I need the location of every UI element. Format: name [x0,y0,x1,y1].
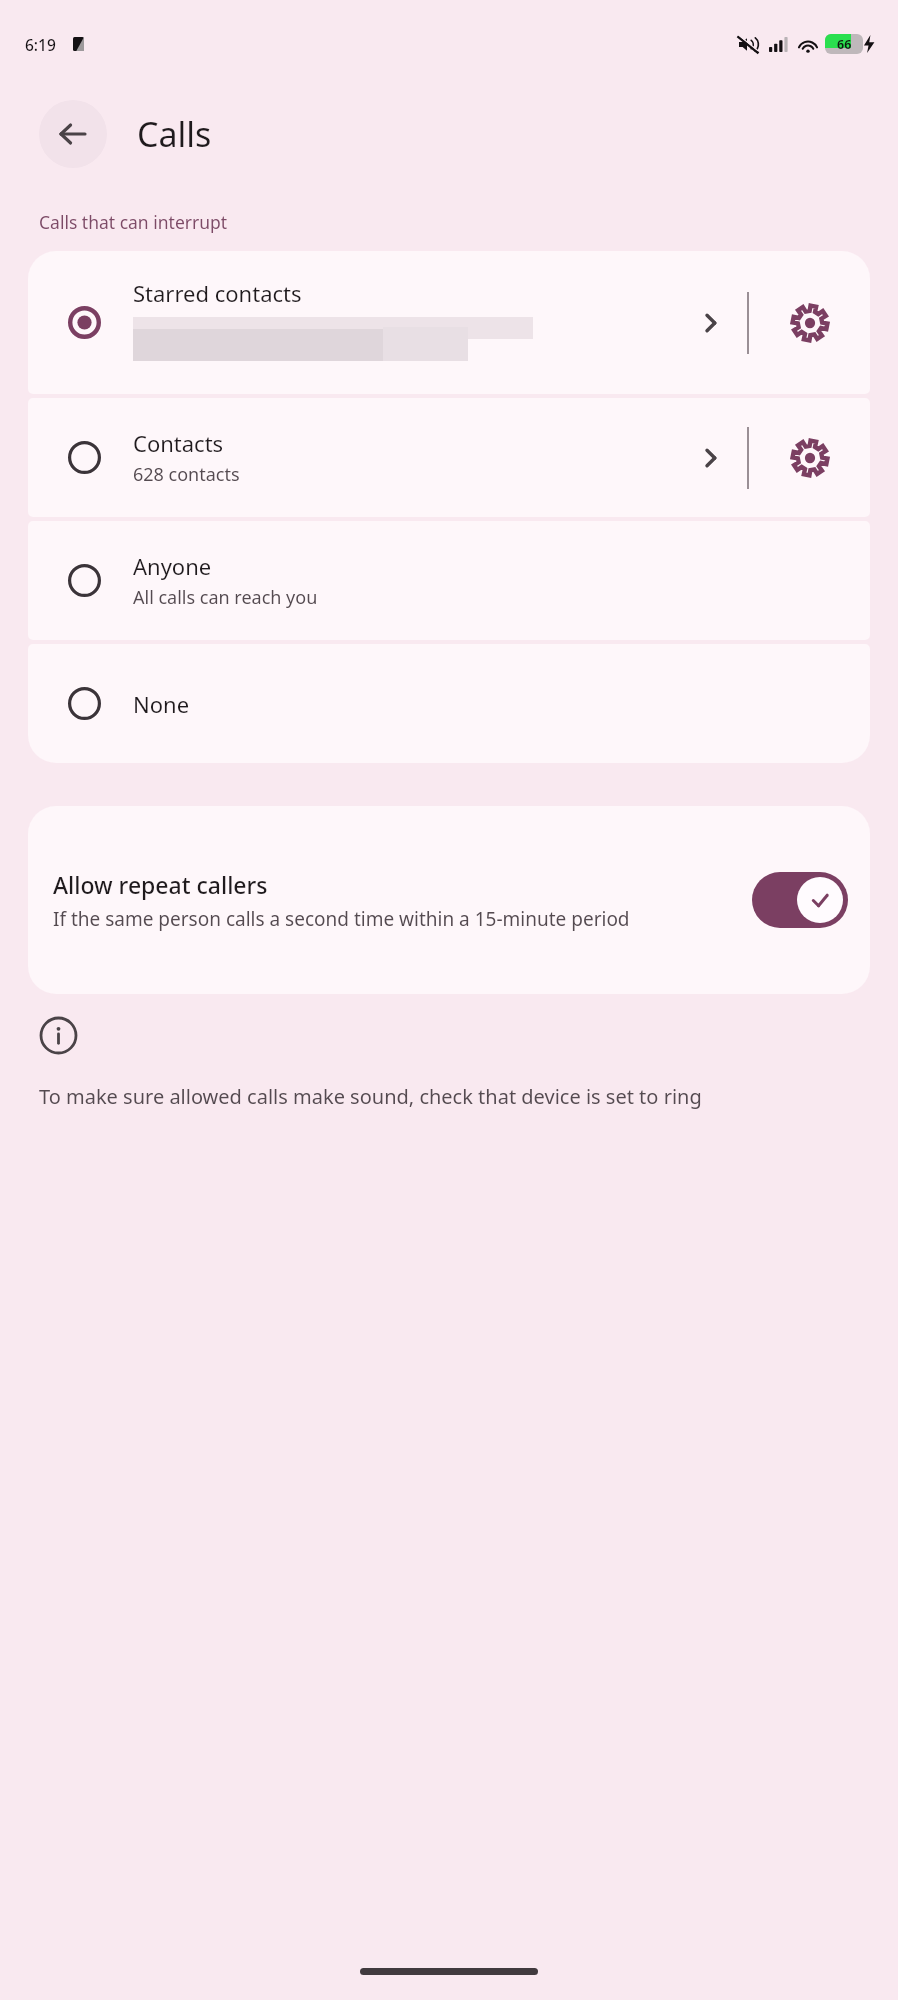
staticText: All calls can reach you [133,585,318,610]
staticText: Calls [137,111,212,157]
staticText: Allow repeat callers [53,869,268,900]
staticText: 6:19 [25,34,56,55]
staticText: 66 [837,36,852,53]
staticText: Contacts [133,428,224,458]
button[interactable]: None [28,644,870,763]
staticText: None [133,689,190,719]
button[interactable]: Allow repeat callers toggle [752,872,848,928]
staticText: Starred contacts [133,278,302,308]
staticText: 628 contacts [133,462,240,487]
button[interactable]: Allow repeat callers [28,806,870,994]
staticText: Calls that can interrupt [39,210,228,234]
button[interactable]: Starred contacts [28,278,747,367]
button[interactable]: Contacts settings [749,398,870,517]
button[interactable]: Starred contacts settings [749,251,870,394]
staticText: If the same person calls a second time w… [53,906,630,932]
staticText: Anyone [133,551,212,581]
button[interactable]: Back [39,100,107,168]
button[interactable]: Anyone [28,521,870,640]
button[interactable]: Contacts [28,428,747,487]
staticText: To make sure allowed calls make sound, c… [39,1083,702,1110]
